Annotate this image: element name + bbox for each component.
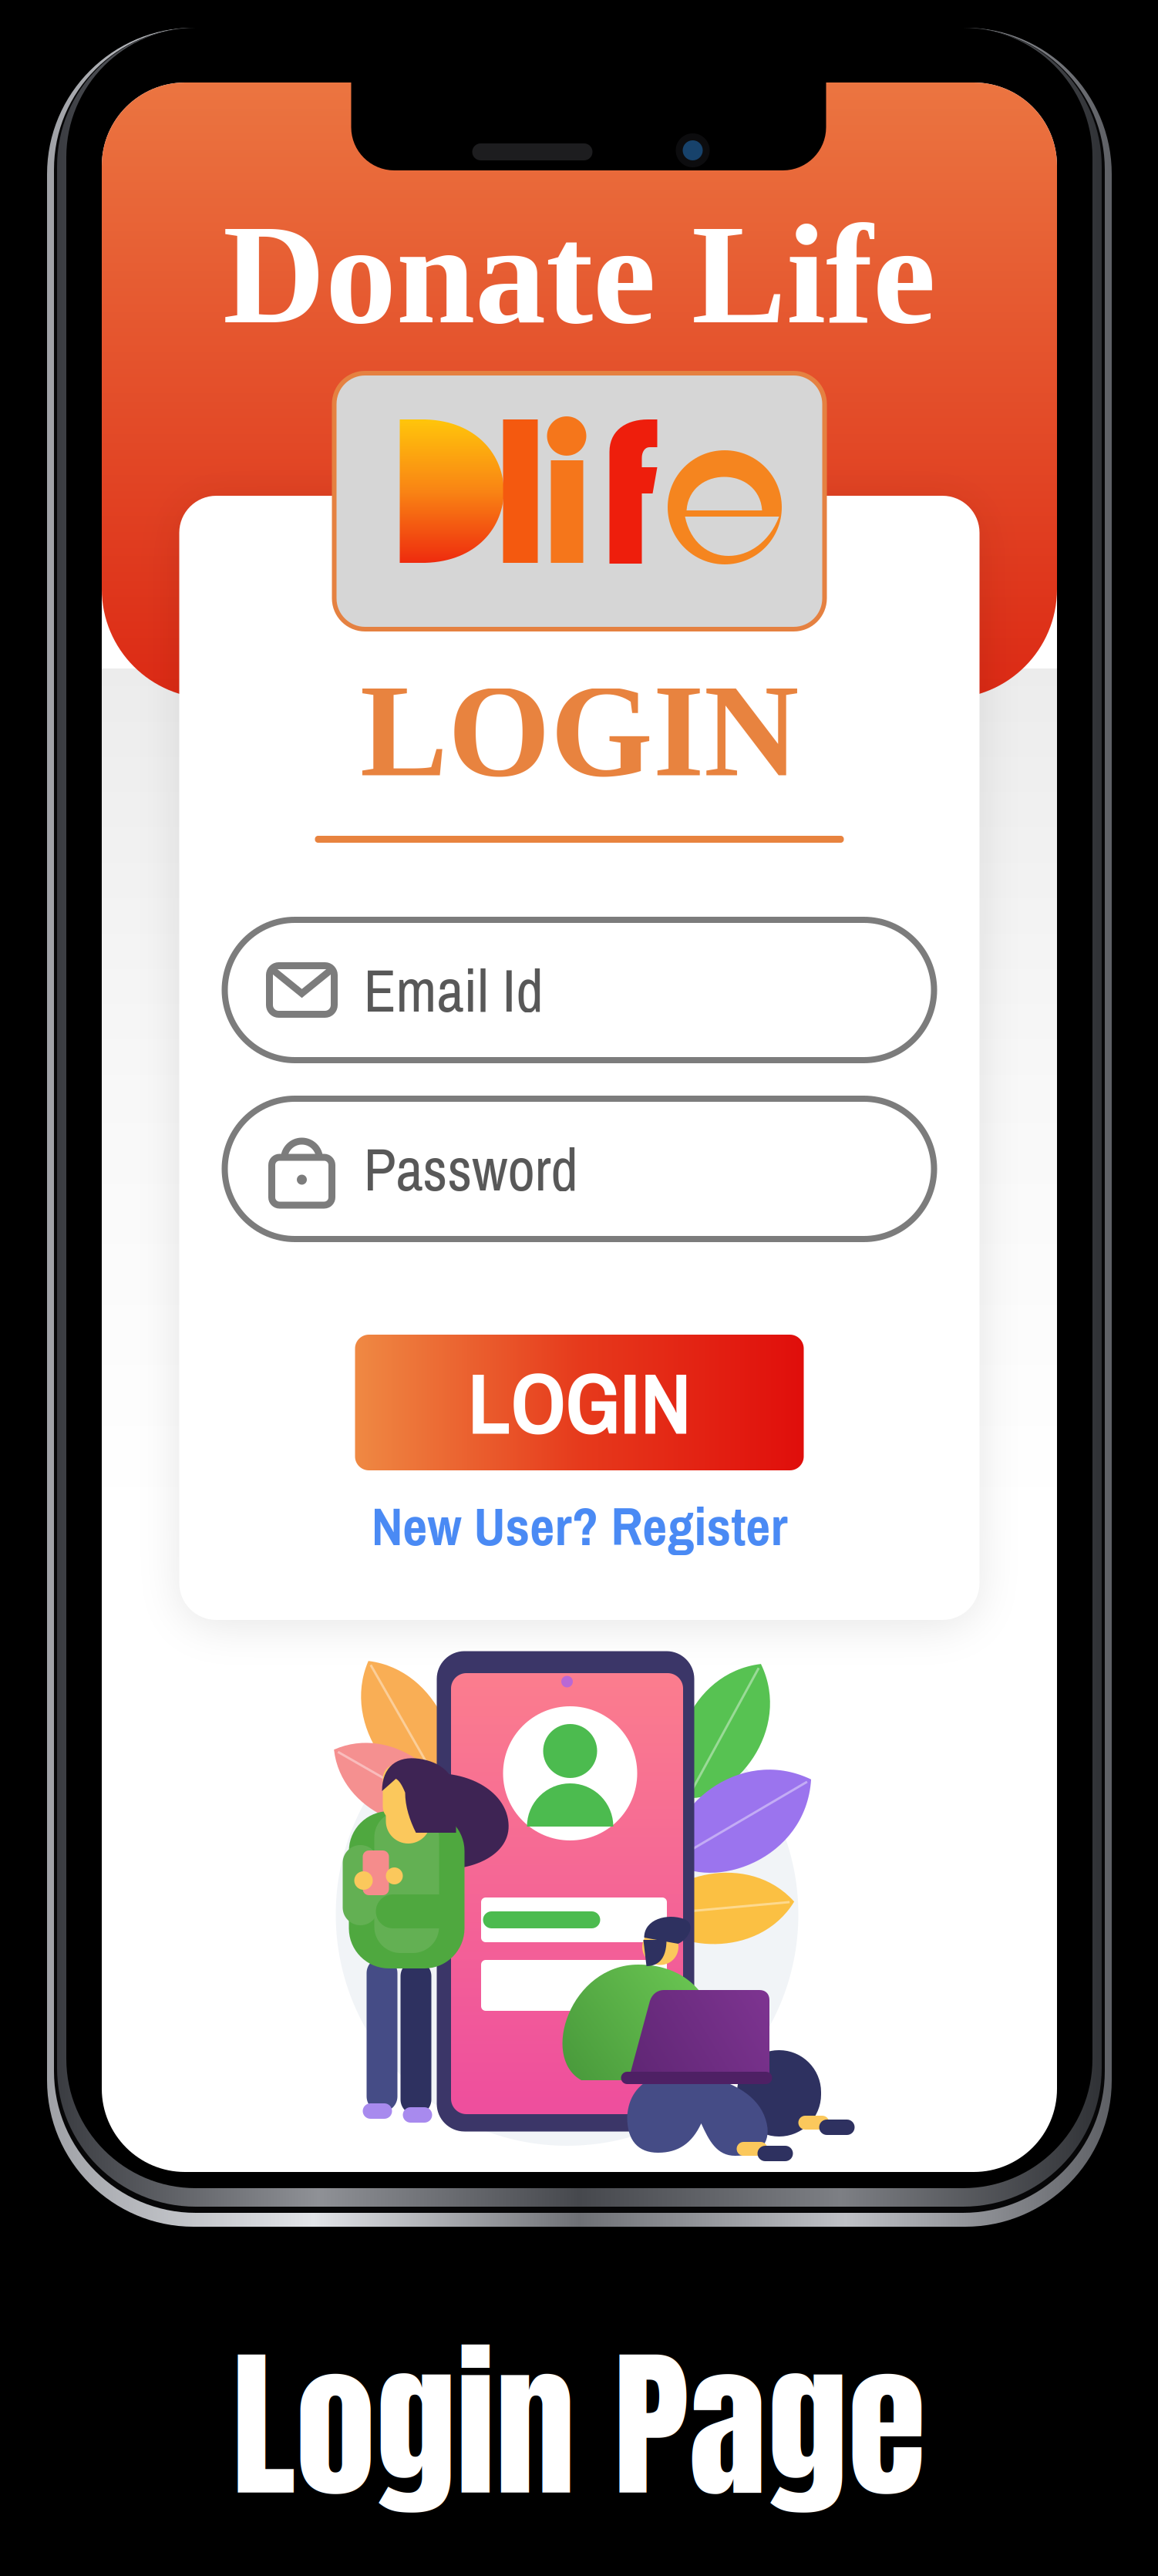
staticText: Login Page <box>232 2304 926 2545</box>
button[interactable]: Password <box>225 1099 934 1239</box>
staticText: LOGIN <box>360 658 799 804</box>
button[interactable]: Email Id <box>225 920 934 1060</box>
staticText: Email Id <box>364 950 543 1030</box>
staticText: New User? Register <box>371 1490 788 1562</box>
button[interactable]: New User? Register <box>340 1486 818 1566</box>
staticText: LOGIN <box>468 1344 691 1461</box>
staticText: Donate Life <box>223 196 936 353</box>
button[interactable]: LOGIN <box>355 1335 804 1470</box>
staticText: Password <box>364 1129 578 1209</box>
